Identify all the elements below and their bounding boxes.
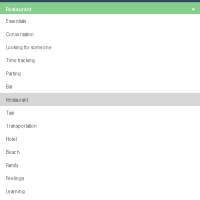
staticText: Restaurant xyxy=(6,7,32,12)
staticText: Bar xyxy=(6,84,13,90)
button[interactable]: Bar xyxy=(0,80,200,93)
staticText: Transportation xyxy=(6,124,37,129)
staticText: Family xyxy=(6,163,18,168)
staticText: Time tracking xyxy=(6,58,35,63)
button[interactable]: Essentials xyxy=(0,14,200,27)
button[interactable]: Feelings xyxy=(0,171,200,185)
staticText: Essentials xyxy=(6,19,26,24)
staticText: Parting xyxy=(6,71,21,76)
staticText: Conversation xyxy=(6,32,34,37)
button[interactable]: Taxi xyxy=(0,106,200,119)
button[interactable]: Learning xyxy=(0,185,200,198)
button[interactable]: Hotel xyxy=(0,132,200,145)
button[interactable]: Beach xyxy=(0,145,200,158)
button[interactable]: Family xyxy=(0,158,200,171)
button[interactable]: Parting xyxy=(0,67,200,80)
button[interactable]: Looking for someone xyxy=(0,40,200,54)
staticText: Hotel xyxy=(6,137,17,142)
button[interactable]: Conversation xyxy=(0,27,200,40)
staticText: Beach xyxy=(6,150,20,155)
button[interactable]: Restaurant category xyxy=(0,3,200,14)
button[interactable]: Transportation xyxy=(0,119,200,132)
staticText: Taxi xyxy=(6,110,14,116)
staticText: Restaurant xyxy=(6,97,28,103)
button[interactable]: Restaurant xyxy=(0,93,200,106)
button[interactable]: Time tracking xyxy=(0,54,200,67)
staticText: Feelings xyxy=(6,176,24,181)
staticText: Learning xyxy=(6,189,25,194)
staticText: Looking for someone xyxy=(6,45,52,50)
